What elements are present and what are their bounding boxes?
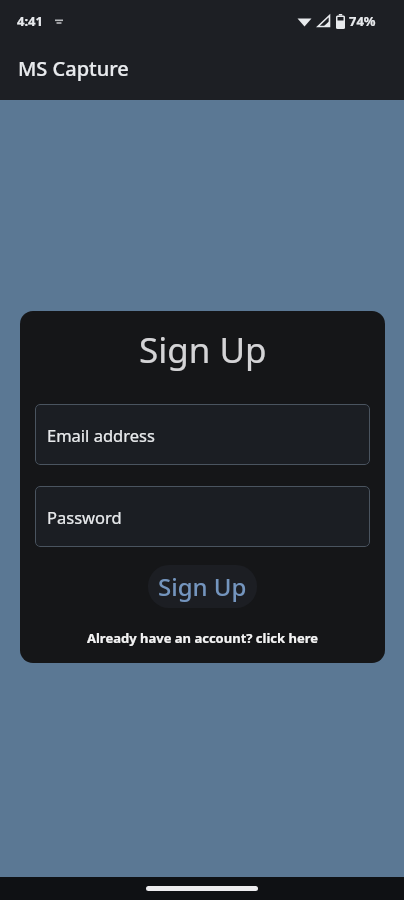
staticText: Sign Up bbox=[139, 326, 267, 374]
staticText: Password bbox=[47, 506, 122, 528]
staticText: 4:41 bbox=[17, 12, 43, 30]
button[interactable]: Already have an account? click here bbox=[87, 629, 318, 647]
staticText: Sign Up bbox=[158, 570, 247, 603]
button[interactable]: Email address bbox=[35, 404, 370, 465]
button[interactable]: Password bbox=[35, 486, 370, 547]
staticText: Email address bbox=[47, 424, 155, 446]
button[interactable]: Sign Up bbox=[148, 565, 257, 608]
staticText: MS Capture bbox=[18, 55, 129, 82]
staticText: 74% bbox=[349, 12, 376, 30]
